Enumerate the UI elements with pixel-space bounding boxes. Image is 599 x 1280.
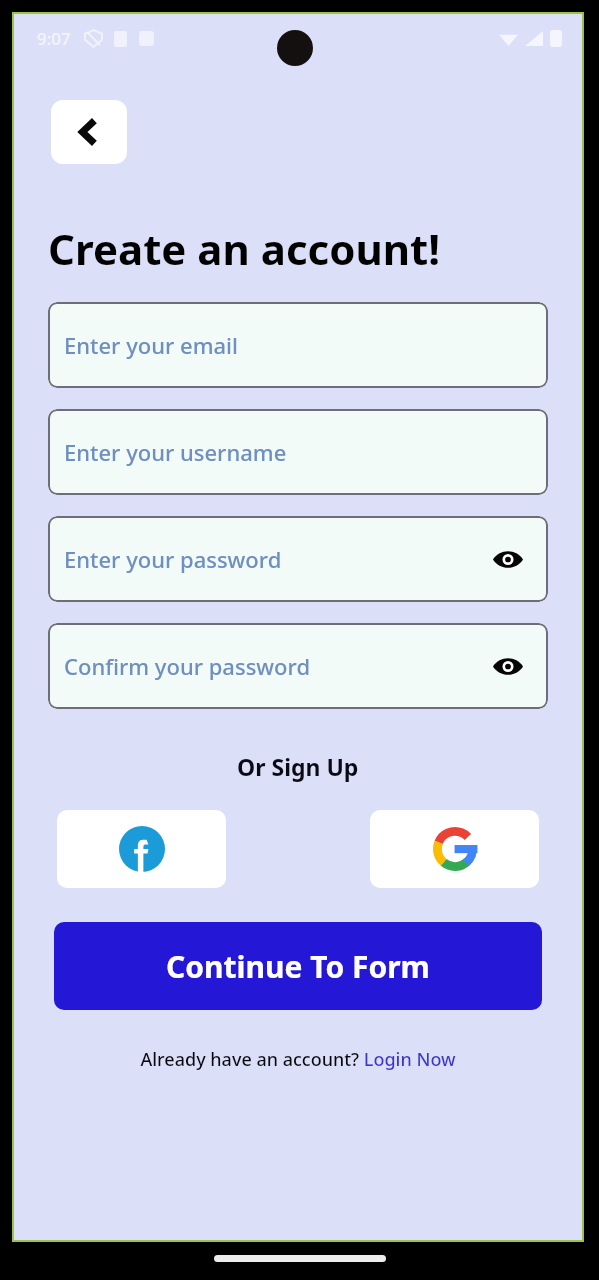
staticText: Enter your password — [64, 544, 282, 574]
staticText: Create an account! — [48, 220, 441, 277]
staticText: Enter your username — [64, 437, 287, 467]
button[interactable]: Enter your username — [48, 409, 548, 495]
staticText: Continue To Form — [166, 946, 430, 987]
button[interactable]: Enter your password — [48, 516, 548, 602]
button[interactable]: Sign up with Google — [370, 810, 539, 888]
button[interactable]: Already have an account? Login Now — [140, 1047, 456, 1072]
staticText: Confirm your password — [64, 651, 311, 681]
button[interactable]: Sign up with Facebook — [57, 810, 226, 888]
staticText: Already have an account? Login Now — [140, 1047, 456, 1072]
staticText: 9:07 — [37, 27, 71, 50]
button[interactable]: Enter your email — [48, 302, 548, 388]
button[interactable]: Continue To Form — [54, 922, 542, 1010]
button[interactable]: Back — [51, 100, 127, 164]
button[interactable]: Confirm your password — [48, 623, 548, 709]
button[interactable]: Toggle password visibility — [490, 541, 526, 577]
staticText: Or Sign Up — [237, 751, 359, 782]
button[interactable]: Toggle password visibility — [490, 648, 526, 684]
staticText: Enter your email — [64, 330, 238, 360]
